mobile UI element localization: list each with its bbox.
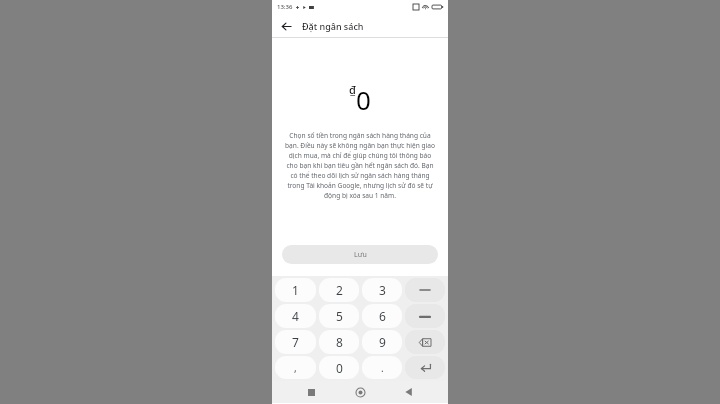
button[interactable]: 1 xyxy=(275,278,316,302)
button[interactable]: 3 xyxy=(362,278,402,302)
staticText: Lưu xyxy=(354,250,367,260)
button[interactable]: 9 xyxy=(362,330,402,354)
button[interactable]: Home xyxy=(350,382,370,402)
staticText: 3 xyxy=(379,282,386,298)
button[interactable]: 2 xyxy=(319,278,359,302)
staticText: 13:36 xyxy=(277,3,293,11)
staticText: 7 xyxy=(292,334,299,350)
staticText: 2 xyxy=(336,282,343,298)
button[interactable]: . xyxy=(362,356,402,379)
staticText: 9 xyxy=(379,334,386,350)
button[interactable]: Back xyxy=(276,16,296,36)
button[interactable]: 6 xyxy=(362,304,402,328)
button[interactable]: Minus xyxy=(405,278,445,302)
button[interactable]: Enter xyxy=(405,356,445,379)
button[interactable]: Space xyxy=(405,304,445,328)
staticText: 0 xyxy=(336,360,343,376)
button[interactable]: 4 xyxy=(275,304,316,328)
staticText: 8 xyxy=(336,334,343,350)
staticText: , xyxy=(294,361,297,375)
button[interactable]: , xyxy=(275,356,316,379)
staticText: . xyxy=(381,361,384,375)
staticText: 0 xyxy=(356,82,371,117)
button[interactable]: 8 xyxy=(319,330,359,354)
staticText: 6 xyxy=(379,308,386,324)
staticText: 4 xyxy=(292,308,299,324)
button[interactable]: Lưu xyxy=(282,245,438,264)
button[interactable]: Recents xyxy=(301,382,321,402)
staticText: 1 xyxy=(292,282,299,298)
button[interactable]: 7 xyxy=(275,330,316,354)
staticText: Chọn số tiền trong ngân sách hàng tháng … xyxy=(284,131,436,200)
button[interactable]: 0 xyxy=(319,356,359,379)
staticText: 5 xyxy=(336,308,343,324)
button[interactable]: 5 xyxy=(319,304,359,328)
button[interactable]: Backspace xyxy=(405,330,445,354)
staticText: Đặt ngân sách xyxy=(302,20,364,32)
staticText: ₫ xyxy=(349,82,356,97)
button[interactable]: Back xyxy=(399,382,419,402)
